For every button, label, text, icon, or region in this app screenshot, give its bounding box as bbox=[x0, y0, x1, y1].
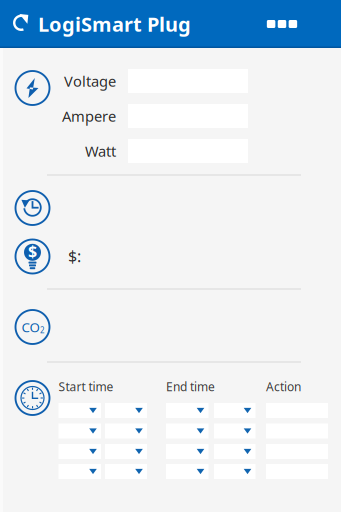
staticText: $ bbox=[28, 240, 37, 262]
button[interactable]: Select time bbox=[105, 423, 147, 438]
staticText: 2 bbox=[40, 325, 45, 335]
button[interactable]: Select time bbox=[58, 444, 101, 459]
staticText: Ampere bbox=[62, 106, 116, 126]
button[interactable]: Select time bbox=[166, 403, 208, 418]
button[interactable]: Select time bbox=[166, 444, 208, 459]
staticText: LogiSmart Plug bbox=[38, 11, 191, 37]
staticText: Start time bbox=[58, 378, 113, 394]
button[interactable]: Select time bbox=[58, 464, 101, 479]
staticText: $: bbox=[68, 245, 81, 267]
staticText: Watt bbox=[85, 141, 116, 161]
button[interactable]: Menu bbox=[258, 0, 306, 48]
button[interactable]: Select time bbox=[214, 403, 255, 418]
staticText: CO bbox=[22, 318, 40, 336]
button[interactable]: Select time bbox=[58, 423, 101, 438]
button[interactable]: Refresh bbox=[6, 0, 40, 48]
button[interactable]: Select time bbox=[214, 444, 255, 459]
button[interactable]: Select time bbox=[214, 464, 255, 479]
button[interactable]: Select time bbox=[214, 423, 255, 438]
button[interactable]: Select time bbox=[105, 444, 147, 459]
button[interactable]: Select time bbox=[166, 464, 208, 479]
staticText: Voltage bbox=[64, 71, 116, 91]
staticText: End time bbox=[166, 378, 215, 394]
button[interactable]: Select time bbox=[105, 464, 147, 479]
button[interactable]: Select time bbox=[58, 403, 101, 418]
button[interactable]: Select time bbox=[105, 403, 147, 418]
button[interactable]: Select time bbox=[166, 423, 208, 438]
staticText: Action bbox=[266, 378, 301, 394]
